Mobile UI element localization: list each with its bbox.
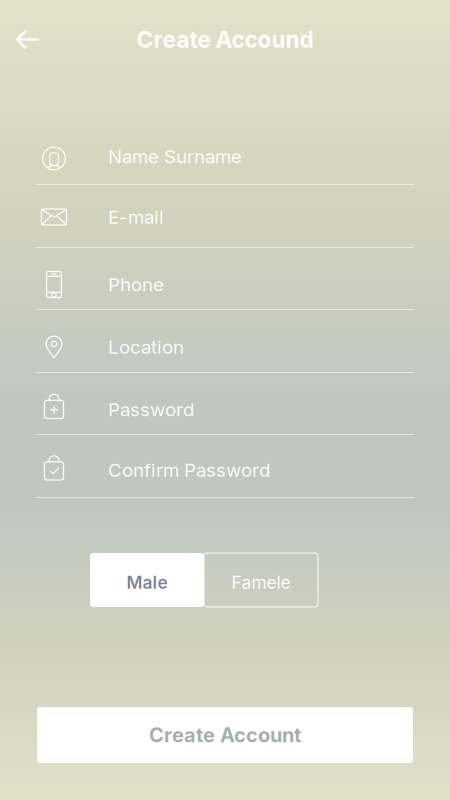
button[interactable]: Back [0,13,55,65]
button[interactable]: Create Account [37,707,413,763]
staticText: Confirm Password [108,459,270,481]
staticText: Create Accound [136,26,313,53]
button[interactable]: Famele [204,553,318,607]
staticText: E-mail [108,206,164,228]
staticText: Male [126,572,167,593]
staticText: Phone [108,273,164,296]
staticText: Location [108,336,184,358]
staticText: Name Surname [108,145,242,168]
button[interactable]: Male [90,553,204,607]
staticText: Create Account [149,723,301,747]
staticText: Famele [231,572,290,593]
staticText: Password [108,398,194,421]
